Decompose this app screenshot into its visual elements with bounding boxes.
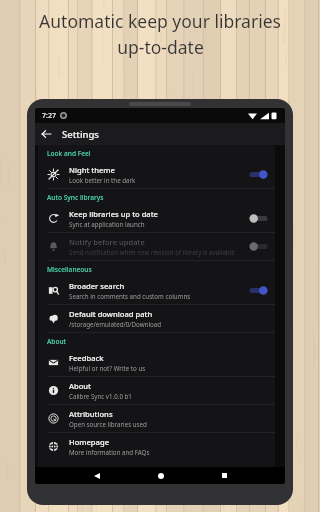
staticText: /storage/emulated/0/Download bbox=[69, 320, 162, 328]
staticText: Open source libraries used bbox=[69, 420, 147, 428]
button[interactable]: Default download path bbox=[38, 305, 275, 332]
staticText: Homepage bbox=[69, 437, 109, 447]
staticText: Keep libraries up to date bbox=[69, 209, 158, 219]
staticText: Look better in the dark bbox=[69, 176, 136, 184]
button[interactable]: Toggle bbox=[248, 284, 269, 297]
button[interactable]: Toggle bbox=[248, 168, 269, 181]
staticText: More information and FAQs bbox=[69, 448, 150, 456]
button[interactable]: Feedback bbox=[38, 349, 275, 376]
staticText: About bbox=[47, 337, 67, 346]
button[interactable]: Notify before update bbox=[38, 233, 275, 260]
button[interactable]: Back bbox=[35, 123, 57, 145]
staticText: Night theme bbox=[69, 165, 115, 175]
button[interactable]: Recents bbox=[216, 467, 233, 484]
button[interactable]: Night theme bbox=[38, 161, 275, 188]
staticText: Feedback bbox=[69, 353, 104, 363]
staticText: Send notification when new revision of l… bbox=[69, 248, 235, 256]
staticText: Auto Sync librarys bbox=[47, 193, 104, 202]
staticText: Look and Feel bbox=[47, 149, 91, 158]
staticText: Sync at application launch bbox=[69, 220, 145, 228]
staticText: Notify before update bbox=[69, 237, 145, 247]
staticText: About bbox=[69, 381, 91, 391]
staticText: Attributions bbox=[69, 409, 113, 419]
staticText: up-to-date bbox=[117, 35, 204, 59]
staticText: Settings bbox=[62, 128, 99, 141]
button[interactable]: Broader search bbox=[38, 277, 275, 304]
staticText: Automatic keep your libraries bbox=[39, 9, 281, 33]
staticText: Search in comments and custom columns bbox=[69, 292, 191, 300]
button[interactable]: Toggle bbox=[248, 240, 269, 253]
button[interactable]: Back bbox=[88, 467, 105, 484]
staticText: Default download path bbox=[69, 309, 153, 319]
button[interactable]: Attributions bbox=[38, 405, 275, 432]
staticText: Calibre Sync v1.0.0 b1 bbox=[69, 392, 132, 400]
staticText: Helpful or not? Write to us bbox=[69, 364, 146, 372]
button[interactable]: Homepage bbox=[38, 433, 275, 460]
staticText: Miscellaneous bbox=[47, 265, 92, 274]
button[interactable]: Keep libraries up to date bbox=[38, 205, 275, 232]
staticText: Broader search bbox=[69, 281, 125, 291]
staticText: 7:27 bbox=[42, 111, 56, 121]
button[interactable]: Home bbox=[152, 467, 169, 484]
button[interactable]: Toggle bbox=[248, 212, 269, 225]
button[interactable]: About bbox=[38, 377, 275, 404]
